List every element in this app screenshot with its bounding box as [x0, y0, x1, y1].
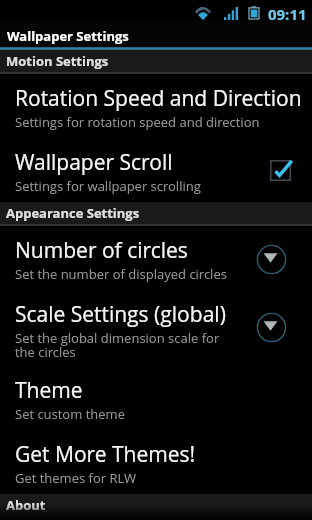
button[interactable]: Open options — [253, 241, 289, 277]
staticText: Motion Settings — [6, 52, 109, 70]
staticText: Appearance Settings — [6, 204, 140, 222]
button[interactable]: Scale Settings (global) — [0, 290, 312, 366]
button[interactable]: Open options — [253, 309, 289, 345]
staticText: Set custom theme — [15, 405, 125, 423]
button[interactable]: Wallpaper Scroll — [0, 138, 312, 202]
staticText: Rotation Speed and Direction — [15, 84, 302, 113]
staticText: Get More Themes! — [15, 440, 196, 469]
button[interactable]: Get More Themes! — [0, 430, 312, 494]
button[interactable]: Number of circles — [0, 226, 312, 290]
button[interactable]: Rotation Speed and Direction — [0, 74, 312, 138]
staticText: Theme — [15, 376, 83, 405]
staticText: 09:11 — [268, 4, 307, 24]
button[interactable]: Theme — [0, 366, 312, 430]
button[interactable]: Wallpaper scroll checkbox — [262, 152, 298, 188]
staticText: Settings for wallpaper scrolling — [15, 177, 201, 195]
staticText: Scale Settings (global) — [15, 300, 226, 329]
staticText: Set the number of displayed circles — [15, 265, 227, 283]
staticText: Wallpaper Settings — [7, 27, 129, 45]
staticText: Settings for rotation speed and directio… — [15, 113, 260, 131]
staticText: Number of circles — [15, 236, 188, 265]
staticText: About — [6, 496, 46, 514]
staticText: Get themes for RLW — [15, 469, 137, 487]
staticText: Wallpaper Scroll — [15, 148, 173, 177]
staticText: Set the global dimension scale for the c… — [15, 329, 237, 360]
